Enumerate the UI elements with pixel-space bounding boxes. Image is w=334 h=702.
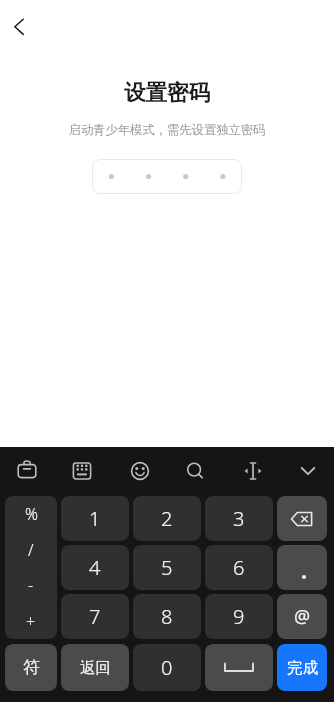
- button[interactable]: 完成: [277, 644, 327, 691]
- button[interactable]: [205, 644, 273, 691]
- staticText: /: [28, 539, 34, 561]
- button[interactable]: [11, 453, 47, 489]
- button[interactable]: 符: [5, 644, 57, 691]
- button[interactable]: [290, 453, 326, 489]
- button[interactable]: [122, 453, 158, 489]
- button[interactable]: 7: [61, 594, 129, 639]
- staticText: 符: [23, 657, 40, 678]
- staticText: 2: [161, 505, 173, 532]
- staticText: 1: [89, 505, 101, 532]
- button[interactable]: 3: [205, 496, 273, 541]
- button[interactable]: 9: [205, 594, 273, 639]
- staticText: @: [294, 604, 311, 629]
- staticText: -: [28, 574, 34, 596]
- button[interactable]: 2: [133, 496, 201, 541]
- staticText: 4: [89, 554, 101, 581]
- button[interactable]: 6: [205, 545, 273, 590]
- button[interactable]: @: [277, 594, 327, 639]
- staticText: 0: [161, 654, 173, 681]
- staticText: 7: [89, 603, 101, 630]
- staticText: 5: [161, 554, 173, 581]
- button[interactable]: [277, 496, 327, 541]
- button[interactable]: [92, 159, 242, 194]
- staticText: 启动青少年模式，需先设置独立密码: [0, 122, 334, 137]
- button[interactable]: [277, 545, 327, 590]
- button[interactable]: [235, 453, 271, 489]
- button[interactable]: [6, 14, 34, 42]
- button[interactable]: 1: [61, 496, 129, 541]
- staticText: 设置密码: [0, 79, 334, 106]
- button[interactable]: 返回: [61, 644, 129, 691]
- staticText: 3: [233, 505, 245, 532]
- button[interactable]: [64, 453, 100, 489]
- button[interactable]: 5: [133, 545, 201, 590]
- button[interactable]: 0: [133, 644, 201, 691]
- staticText: 6: [233, 554, 245, 581]
- staticText: +: [26, 610, 36, 632]
- button[interactable]: [178, 453, 214, 489]
- staticText: 9: [233, 603, 245, 630]
- button[interactable]: %: [5, 496, 57, 639]
- staticText: 8: [161, 603, 173, 630]
- staticText: %: [25, 503, 38, 525]
- button[interactable]: 8: [133, 594, 201, 639]
- staticText: 完成: [287, 658, 318, 678]
- button[interactable]: 4: [61, 545, 129, 590]
- staticText: 返回: [80, 658, 111, 678]
